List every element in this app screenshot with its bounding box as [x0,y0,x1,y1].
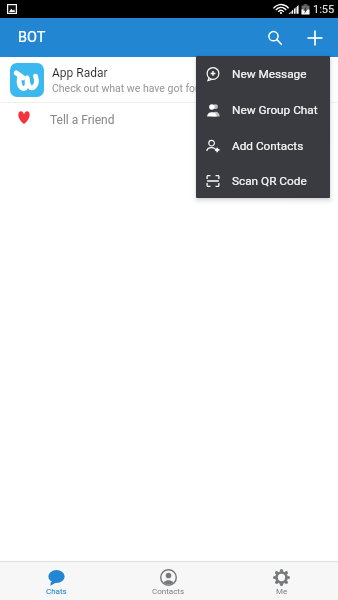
staticText: Me [276,587,288,596]
button[interactable]: Scan QR Code [196,164,330,198]
staticText: Chats [46,587,67,596]
button[interactable]: New Group Chat [196,92,330,128]
staticText: Add Contacts [232,139,304,153]
button[interactable]: Search [255,18,295,57]
staticText: App Radar [52,66,108,80]
button[interactable]: Contacts [112,569,225,600]
button[interactable]: Add Contacts [196,128,330,164]
button[interactable]: App Radar [0,57,338,102]
button[interactable]: Chats [0,569,112,600]
staticText: Tell a Friend [50,113,115,127]
staticText: New Group Chat [232,103,318,117]
button[interactable]: Tell a Friend [0,103,338,135]
button[interactable]: Add [295,18,335,57]
staticText: 1:55 [313,3,335,16]
staticText: Contacts [152,587,185,596]
staticText: BOT [18,29,46,46]
staticText: Check out what we have got for you! [52,82,221,94]
staticText: Scan QR Code [232,174,307,188]
button[interactable]: Me [225,569,338,600]
button[interactable]: New Message [196,56,330,92]
staticText: New Message [232,67,307,81]
